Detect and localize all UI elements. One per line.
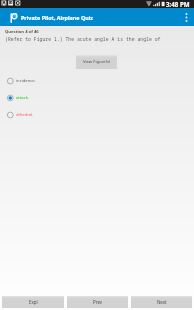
button[interactable]: Next xyxy=(131,296,192,308)
button[interactable]: attack. xyxy=(0,95,194,101)
staticText: dihedral. xyxy=(16,112,34,118)
staticText: Private Pilot, Airplane Quiz xyxy=(21,14,94,21)
staticText: (Refer to Figure 1.) The acute angle A i… xyxy=(5,36,161,43)
button[interactable]: incidence. xyxy=(0,78,194,84)
staticText: Prev xyxy=(93,299,103,305)
staticText: Expl xyxy=(29,299,38,305)
button[interactable]: Prev xyxy=(67,296,128,308)
staticText: incidence. xyxy=(16,78,36,84)
staticText: Question 4 of 46 xyxy=(5,29,39,35)
button[interactable]: More options xyxy=(178,8,194,26)
staticText: 3:48 PM xyxy=(166,0,190,8)
button[interactable]: View Figure(s) xyxy=(76,55,117,69)
staticText: Next xyxy=(157,299,167,305)
staticText: attack. xyxy=(16,95,30,101)
button[interactable]: Expl xyxy=(2,296,64,308)
button[interactable]: dihedral. xyxy=(0,112,194,118)
staticText: View Figure(s) xyxy=(83,59,111,65)
